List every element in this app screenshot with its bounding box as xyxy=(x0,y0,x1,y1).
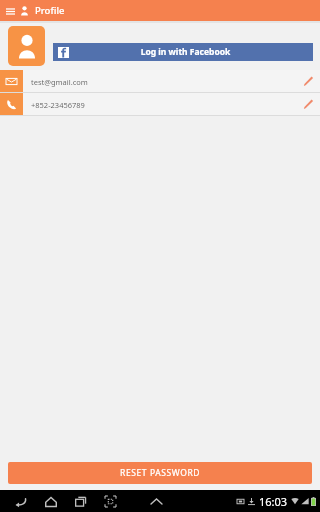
staticText: test@gmail.com xyxy=(31,77,297,87)
button[interactable]: Open navigation menu xyxy=(3,4,17,18)
button[interactable]: Edit Phone xyxy=(297,93,320,116)
staticText: 16:03 xyxy=(259,494,288,509)
other: Phone xyxy=(0,93,23,116)
other: Email xyxy=(0,70,23,93)
button[interactable]: RESET PASSWORD xyxy=(8,462,312,484)
staticText: Log in with Facebook xyxy=(69,46,302,58)
staticText: Profile xyxy=(35,4,65,17)
button[interactable]: Home xyxy=(40,491,61,512)
button[interactable]: Email xyxy=(0,70,320,93)
button[interactable]: Edit Email xyxy=(297,70,320,93)
button[interactable]: Log in with Facebook xyxy=(53,43,313,61)
button[interactable]: Phone xyxy=(0,93,320,116)
button[interactable]: Expand xyxy=(145,490,167,512)
button[interactable]: Recent apps xyxy=(70,491,91,512)
staticText: RESET PASSWORD xyxy=(120,467,201,479)
button[interactable]: Screenshot xyxy=(100,491,121,512)
staticText: +852-23456789 xyxy=(31,100,297,110)
button[interactable]: Back xyxy=(10,491,31,512)
button[interactable]: Profile picture xyxy=(8,26,45,66)
